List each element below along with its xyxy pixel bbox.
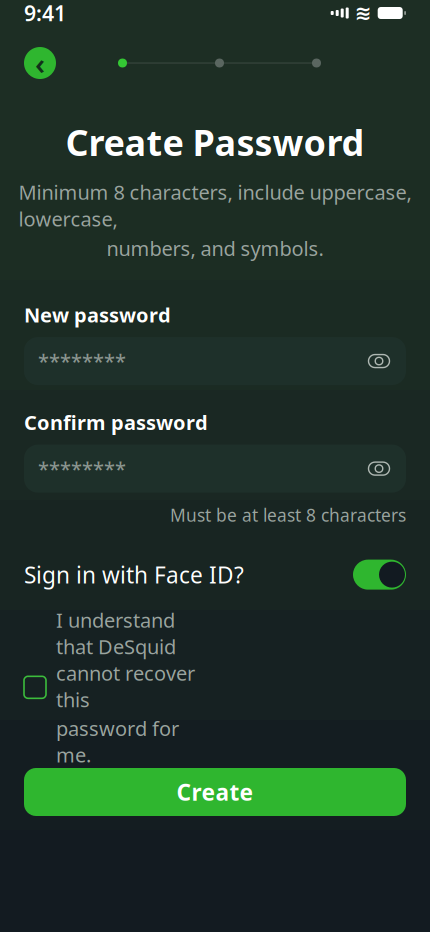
staticText: New password xyxy=(24,301,171,328)
staticText: 9:41 xyxy=(24,0,66,27)
button[interactable]: Show password xyxy=(362,452,396,486)
button[interactable]: I understand that DeSquid cannot recover… xyxy=(0,607,430,768)
staticText: password for me. xyxy=(56,715,179,768)
staticText: ≋ xyxy=(355,2,372,24)
staticText: Create xyxy=(176,777,253,807)
staticText: ******** xyxy=(38,455,126,482)
staticText: Must be at least 8 characters xyxy=(170,504,406,527)
staticText: ‹ xyxy=(35,43,45,82)
staticText: ******** xyxy=(38,348,126,374)
staticText: Sign in with Face ID? xyxy=(24,560,244,590)
staticText: Create Password xyxy=(65,118,364,166)
staticText: Confirm password xyxy=(24,409,208,436)
button[interactable]: Back xyxy=(24,47,56,79)
staticText: I understand that DeSquid cannot recover… xyxy=(56,607,195,713)
staticText: Minimum 8 characters, include uppercase,… xyxy=(18,179,411,232)
staticText: numbers, and symbols. xyxy=(106,235,323,261)
button[interactable]: Show password xyxy=(362,344,396,378)
button[interactable]: Create xyxy=(0,768,430,816)
button[interactable]: Sign in with Face ID? xyxy=(0,547,430,603)
